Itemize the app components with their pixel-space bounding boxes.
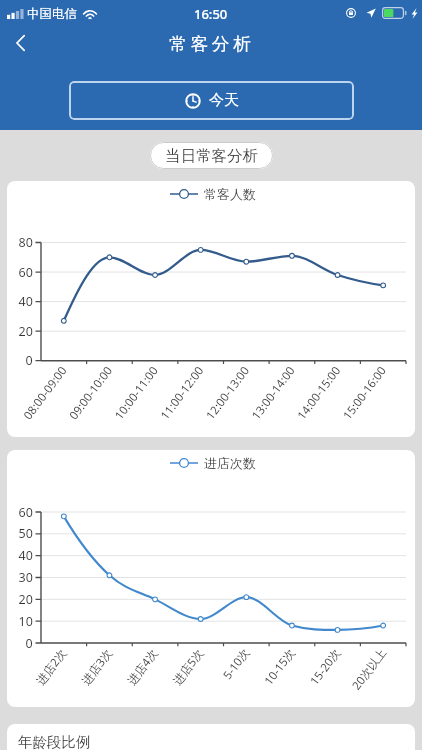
- staticText: 今天: [209, 91, 239, 110]
- button[interactable]: Back: [4, 26, 38, 60]
- staticText: 常客分析: [169, 33, 255, 55]
- staticText: 年龄段比例: [18, 733, 91, 750]
- button[interactable]: 今天: [69, 81, 354, 120]
- button[interactable]: 当日常客分析: [150, 142, 273, 169]
- staticText: 中国电信: [27, 6, 77, 22]
- staticText: 16:50: [194, 5, 228, 23]
- staticText: 常客人数: [204, 186, 256, 202]
- staticText: 当日常客分析: [165, 146, 258, 166]
- staticText: 进店次数: [204, 455, 256, 471]
